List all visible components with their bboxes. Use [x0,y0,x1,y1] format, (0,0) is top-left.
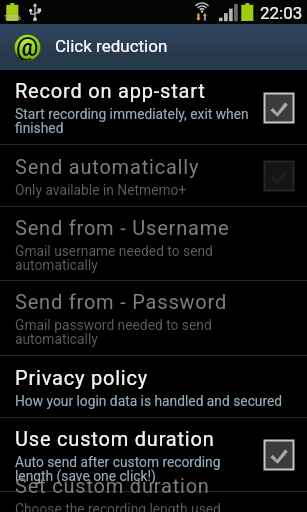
staticText: Privacy policy [15,366,149,389]
button[interactable]: Toggle setting [264,440,294,470]
staticText: Click reduction [55,36,168,56]
button[interactable]: Record on app-start [0,70,307,145]
staticText: Start recording immediately, exit when f… [15,106,249,136]
staticText: Set custom duration [15,474,210,497]
staticText: Choose the recording length used when cu… [15,501,221,512]
button[interactable]: Send automatically [0,145,307,207]
button[interactable]: App icon [14,34,41,61]
button[interactable]: Send from - Username [0,207,307,281]
staticText: Use custom duration [15,427,215,450]
button[interactable]: Toggle setting [264,93,294,123]
staticText: Send from - Password [15,290,228,313]
staticText: Only available in Netmemo+ [15,182,187,198]
staticText: Record on app-start [15,79,206,102]
staticText: Gmail password needed to send automatica… [15,317,212,347]
button[interactable]: Toggle setting [264,161,294,191]
staticText: Gmail username needed to send automatica… [15,243,213,273]
button[interactable]: Set custom duration [0,463,307,512]
staticText: 22:03 [260,3,303,23]
button[interactable]: Send from - Password [0,281,307,356]
staticText: Send automatically [15,155,200,178]
staticText: Auto send after custom recording length … [15,454,221,484]
staticText: 100% [4,14,21,22]
staticText: How your login data is handled and secur… [15,393,283,409]
button[interactable]: Privacy policy [0,356,307,418]
button[interactable]: Use custom duration [0,418,307,492]
staticText: Send from - Username [15,216,230,239]
staticText: @ [16,33,39,60]
